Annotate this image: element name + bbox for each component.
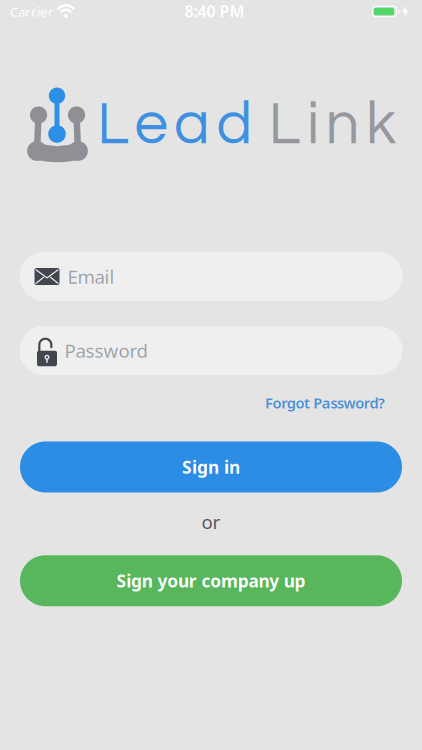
- staticText: Forgot Password?: [265, 393, 385, 412]
- staticText: Link: [268, 94, 396, 156]
- button[interactable]: Sign in: [20, 441, 402, 492]
- button[interactable]: Forgot Password?: [265, 393, 385, 412]
- staticText: Carrier: [10, 3, 54, 20]
- staticText: Password: [64, 338, 147, 363]
- staticText: Sign your company up: [116, 569, 306, 592]
- staticText: Email: [67, 264, 114, 289]
- button[interactable]: Email: [19, 252, 402, 301]
- staticText: 8:40 PM: [184, 0, 244, 22]
- button[interactable]: Password: [19, 326, 402, 375]
- staticText: Lead: [97, 94, 252, 156]
- staticText: Sign in: [182, 455, 240, 478]
- staticText: or: [201, 509, 220, 534]
- button[interactable]: Sign your company up: [20, 555, 402, 606]
